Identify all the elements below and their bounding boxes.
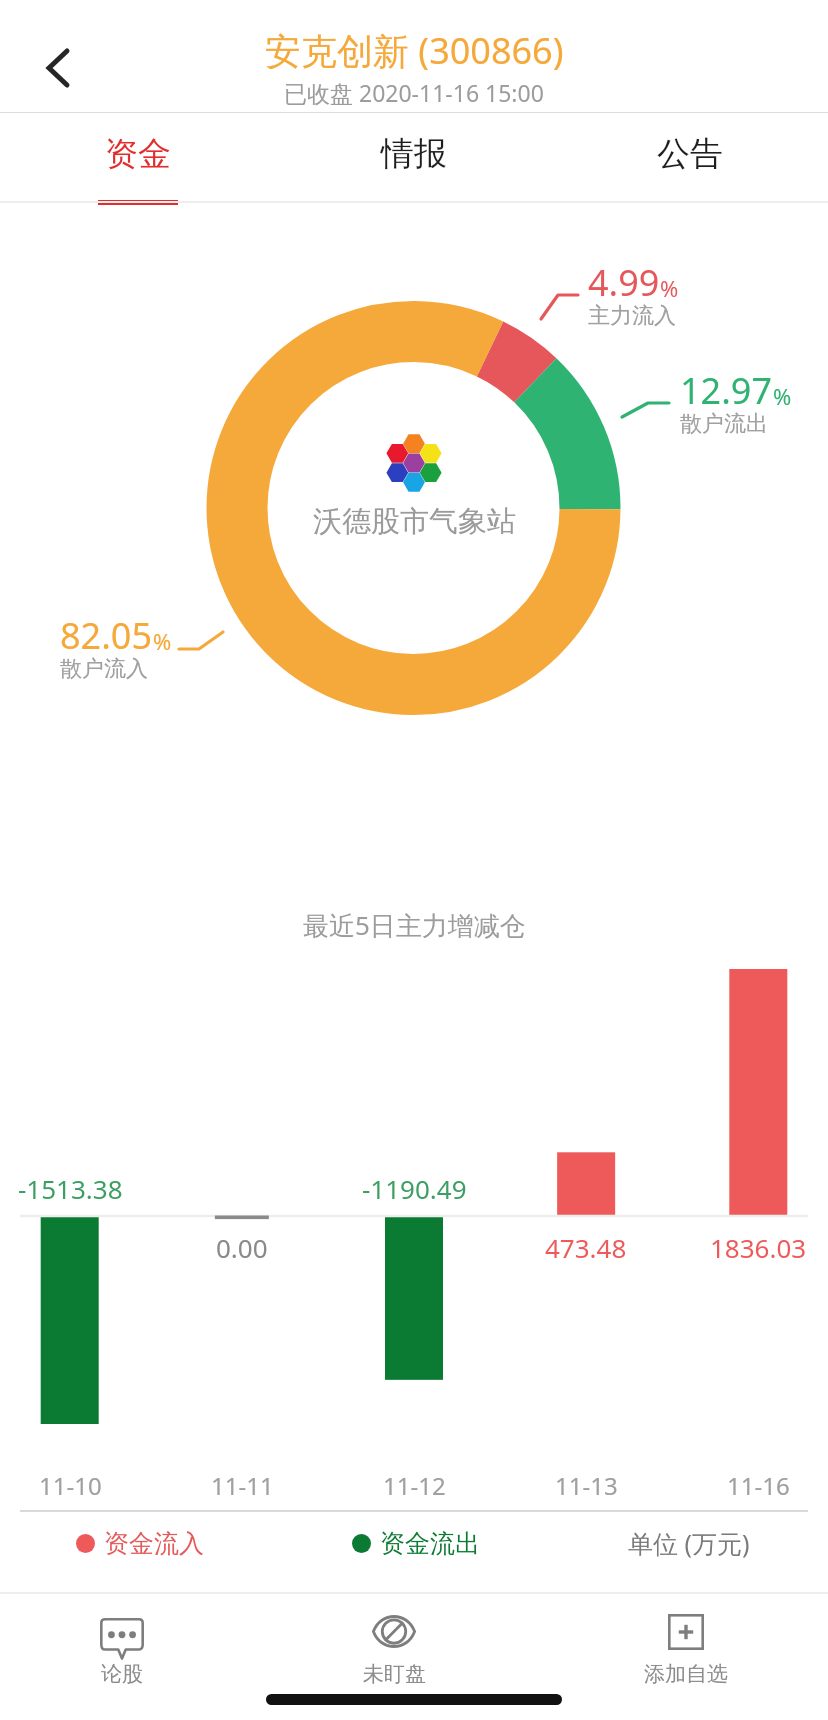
button[interactable]: 资金 <box>0 112 276 203</box>
staticText: -1513.38 <box>18 1171 123 1206</box>
button[interactable]: Not watching <box>304 1602 484 1692</box>
staticText: % <box>660 273 679 303</box>
staticText: 主力流入 <box>588 302 676 330</box>
staticText: 0.00 <box>216 1230 268 1265</box>
staticText: 安克创新 (300866) <box>265 26 564 75</box>
button[interactable]: Add to watchlist <box>596 1602 776 1692</box>
staticText: 散户流入 <box>60 655 148 683</box>
staticText: 473.48 <box>545 1230 627 1265</box>
button[interactable]: Back <box>22 32 94 104</box>
staticText: 沃德股市气象站 <box>313 503 516 540</box>
staticText: 12.97 <box>680 366 773 415</box>
staticText: 资金 <box>105 133 171 175</box>
staticText: 最近5日主力增减仓 <box>303 907 526 943</box>
staticText: 情报 <box>381 133 447 175</box>
staticText: 82.05 <box>60 611 153 660</box>
staticText: 论股 <box>101 1661 143 1687</box>
staticText: 资金流出 <box>380 1528 480 1559</box>
staticText: 11-16 <box>727 1469 790 1502</box>
staticText: 添加自选 <box>644 1661 728 1687</box>
staticText: 单位 (万元) <box>628 1526 750 1560</box>
button[interactable]: 情报 <box>276 112 552 203</box>
staticText: -1190.49 <box>362 1171 467 1206</box>
staticText: % <box>153 626 172 656</box>
staticText: 11-10 <box>39 1469 102 1502</box>
button[interactable]: Discuss stocks <box>32 1602 212 1692</box>
staticText: 公告 <box>657 133 723 175</box>
staticText: 11-13 <box>555 1469 618 1502</box>
staticText: 11-12 <box>383 1469 446 1502</box>
staticText: 已收盘 2020-11-16 15:00 <box>284 77 544 108</box>
staticText: 4.99 <box>588 258 660 307</box>
staticText: 11-11 <box>211 1469 274 1502</box>
staticText: 1836.03 <box>710 1230 807 1265</box>
staticText: 散户流出 <box>680 410 768 438</box>
button[interactable]: 公告 <box>552 112 828 203</box>
staticText: 资金流入 <box>104 1528 204 1559</box>
staticText: % <box>773 381 792 411</box>
staticText: 未盯盘 <box>363 1661 426 1687</box>
